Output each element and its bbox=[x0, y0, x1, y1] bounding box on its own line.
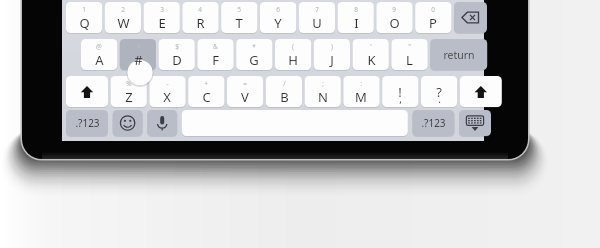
staticText: ! bbox=[398, 83, 402, 101]
staticText: G bbox=[249, 51, 259, 69]
staticText: I bbox=[354, 14, 359, 32]
staticText: W bbox=[117, 14, 130, 32]
button[interactable]: O bbox=[376, 2, 412, 33]
staticText: 8 bbox=[354, 5, 358, 14]
button[interactable]: N bbox=[305, 76, 341, 107]
staticText: / bbox=[283, 79, 286, 88]
staticText: O bbox=[389, 14, 400, 32]
staticText: = bbox=[243, 79, 247, 88]
staticText: P bbox=[429, 14, 437, 32]
staticText: H bbox=[288, 51, 298, 69]
staticText: & bbox=[213, 42, 218, 51]
staticText: - bbox=[166, 79, 169, 88]
staticText: ' bbox=[370, 42, 372, 51]
staticText: L bbox=[406, 51, 413, 69]
button[interactable]: E bbox=[144, 2, 180, 33]
staticText: return bbox=[443, 48, 475, 62]
staticText: 2 bbox=[121, 5, 125, 14]
staticText: 7 bbox=[315, 5, 319, 14]
staticText: @ bbox=[96, 42, 102, 51]
staticText: B bbox=[280, 88, 289, 106]
button[interactable]: W bbox=[105, 2, 141, 33]
staticText: D bbox=[172, 51, 182, 69]
button[interactable]: Dictation bbox=[147, 110, 177, 136]
staticText: A bbox=[95, 51, 104, 69]
staticText: U bbox=[312, 14, 322, 32]
button[interactable]: U bbox=[299, 2, 335, 33]
button[interactable]: ! bbox=[382, 76, 418, 107]
button[interactable]: G bbox=[236, 39, 272, 70]
staticText: : bbox=[360, 79, 362, 88]
staticText: V bbox=[241, 88, 249, 106]
button[interactable]: R bbox=[182, 2, 218, 33]
button[interactable]: return bbox=[430, 39, 487, 70]
button[interactable]: .?123 bbox=[66, 110, 108, 136]
staticText: Q bbox=[79, 14, 90, 32]
staticText: ) bbox=[331, 42, 333, 51]
staticText: , bbox=[399, 92, 402, 106]
staticText: N bbox=[318, 88, 328, 106]
staticText: 5 bbox=[237, 5, 241, 14]
staticText: J bbox=[330, 51, 334, 69]
button[interactable]: Emoji bbox=[113, 110, 143, 136]
staticText: 6 bbox=[276, 5, 280, 14]
staticText: 3 bbox=[160, 5, 164, 14]
button[interactable]: Q bbox=[66, 2, 102, 33]
staticText: % bbox=[126, 79, 132, 88]
staticText: ? bbox=[436, 83, 442, 101]
staticText: Z bbox=[125, 88, 133, 106]
staticText: $ bbox=[175, 42, 179, 51]
button[interactable]: A bbox=[81, 39, 117, 70]
staticText: 1 bbox=[82, 5, 86, 14]
staticText: . bbox=[438, 92, 441, 106]
button[interactable]: Shift bbox=[66, 76, 108, 107]
button[interactable]: Z bbox=[111, 76, 147, 107]
button[interactable]: P bbox=[415, 2, 451, 33]
staticText: .?123 bbox=[421, 116, 446, 130]
button[interactable]: L bbox=[391, 39, 427, 70]
button[interactable]: # bbox=[120, 39, 156, 70]
staticText: R bbox=[196, 14, 205, 32]
button[interactable]: D bbox=[159, 39, 195, 70]
button[interactable]: H bbox=[275, 39, 311, 70]
staticText: X bbox=[163, 88, 171, 106]
button[interactable]: .?123 bbox=[412, 110, 454, 136]
staticText: " bbox=[408, 42, 411, 51]
staticText: + bbox=[204, 79, 208, 88]
staticText: ( bbox=[292, 42, 294, 51]
button[interactable]: T bbox=[221, 2, 257, 33]
button[interactable]: ? bbox=[421, 76, 457, 107]
staticText: T bbox=[235, 14, 243, 32]
staticText: C bbox=[202, 88, 211, 106]
staticText: K bbox=[367, 51, 376, 69]
staticText: 9 bbox=[392, 5, 396, 14]
button[interactable]: C bbox=[188, 76, 224, 107]
button[interactable]: Delete bbox=[454, 2, 487, 33]
button[interactable]: I bbox=[338, 2, 374, 33]
staticText: .?123 bbox=[75, 116, 100, 130]
button[interactable]: K bbox=[353, 39, 389, 70]
staticText: 4 bbox=[198, 5, 202, 14]
staticText: M bbox=[355, 88, 367, 106]
button[interactable]: J bbox=[314, 39, 350, 70]
button[interactable]: B bbox=[266, 76, 302, 107]
staticText: F bbox=[212, 51, 219, 69]
staticText: 0 bbox=[431, 5, 435, 14]
staticText: E bbox=[158, 14, 166, 32]
button[interactable]: X bbox=[149, 76, 185, 107]
staticText: * bbox=[252, 42, 256, 51]
button[interactable]: Y bbox=[260, 2, 296, 33]
staticText: # bbox=[134, 51, 143, 69]
button[interactable]: F bbox=[197, 39, 233, 70]
staticText: Y bbox=[274, 14, 282, 32]
button[interactable]: V bbox=[227, 76, 263, 107]
button[interactable]: M bbox=[343, 76, 379, 107]
button[interactable]: Shift bbox=[460, 76, 502, 107]
staticText: ; bbox=[322, 79, 324, 88]
button[interactable]: Hide keyboard bbox=[459, 110, 491, 136]
